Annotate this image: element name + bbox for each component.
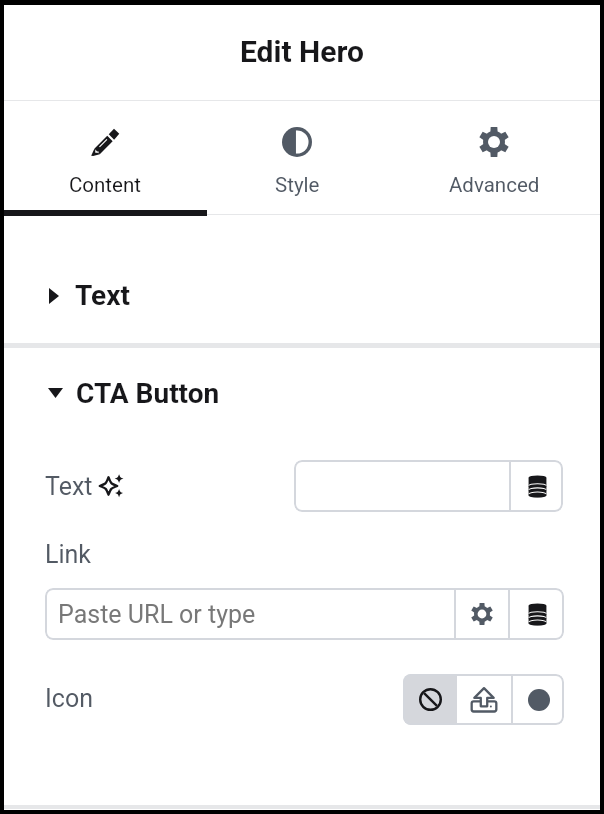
staticText: Link [45,540,92,569]
staticText: Text [45,472,93,501]
button[interactable]: Choose icon [513,674,564,725]
button[interactable]: Paste URL or type [45,588,454,640]
button[interactable]: CTA Button [4,348,600,438]
button[interactable]: No icon [403,674,457,725]
staticText: Icon [45,684,93,713]
button[interactable]: Text [4,221,600,343]
staticText: Paste URL or type [58,600,256,629]
staticText: CTA Button [76,377,220,410]
button[interactable]: Upload icon [457,674,511,725]
button[interactable]: Content [4,101,206,214]
button[interactable]: Dynamic data [510,588,564,640]
button[interactable]: Advanced [388,101,600,214]
staticText: Text [75,279,130,312]
staticText: Content [69,173,141,197]
button[interactable]: Style [206,101,388,214]
staticText: Edit Hero [240,34,364,69]
staticText: Style [275,173,320,197]
button[interactable]: Link settings [456,588,508,640]
button[interactable] [294,460,509,512]
button[interactable]: Text [45,472,93,501]
staticText: Advanced [449,173,540,197]
button[interactable]: Dynamic data [511,460,563,512]
